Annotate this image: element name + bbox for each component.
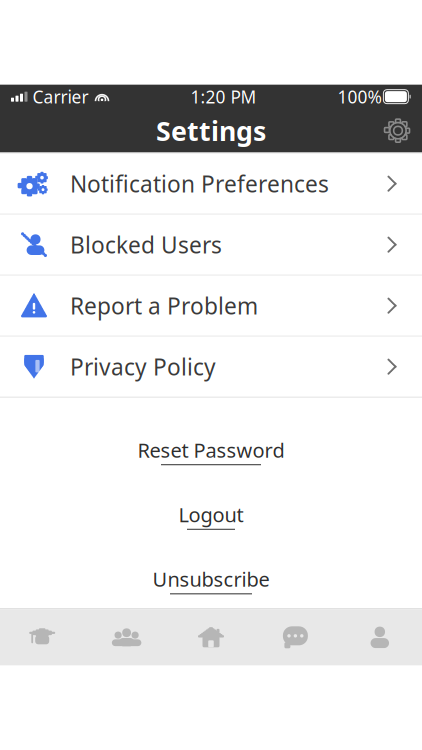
button[interactable]: Groups bbox=[84, 609, 169, 665]
staticText: Report a Problem bbox=[70, 291, 258, 321]
button[interactable]: Reset Password bbox=[127, 431, 294, 471]
button[interactable]: Unsubscribe bbox=[142, 560, 279, 600]
button[interactable]: Settings options bbox=[374, 111, 422, 151]
button[interactable]: Messages bbox=[253, 609, 338, 665]
button[interactable]: Report a Problem bbox=[0, 276, 422, 336]
button[interactable]: Profile bbox=[338, 609, 422, 665]
button[interactable]: Blocked Users bbox=[0, 215, 422, 275]
button[interactable]: Home bbox=[169, 609, 253, 665]
button[interactable]: Learn bbox=[0, 609, 84, 665]
staticText: 1:20 PM bbox=[190, 85, 256, 108]
staticText: Blocked Users bbox=[70, 230, 222, 260]
staticText: Settings bbox=[156, 113, 266, 148]
staticText: Notification Preferences bbox=[70, 169, 329, 199]
staticText: Reset Password bbox=[137, 437, 284, 463]
staticText: 100% bbox=[337, 85, 381, 108]
staticText: Logout bbox=[178, 501, 243, 528]
button[interactable]: Notification Preferences bbox=[0, 154, 422, 214]
staticText: Carrier bbox=[32, 85, 88, 108]
button[interactable]: Logout bbox=[168, 495, 253, 536]
staticText: Unsubscribe bbox=[152, 566, 269, 592]
staticText: Privacy Policy bbox=[70, 352, 216, 382]
button[interactable]: Privacy Policy bbox=[0, 337, 422, 397]
